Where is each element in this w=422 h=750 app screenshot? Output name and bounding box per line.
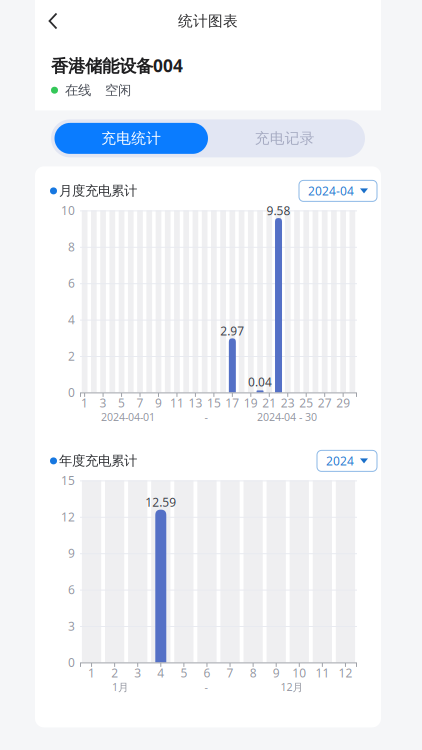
staticText: 年度充电累计 (59, 453, 137, 469)
staticText: 6 (68, 582, 75, 597)
staticText: - (204, 410, 207, 424)
staticText: 1 (81, 395, 88, 411)
staticText: 8 (250, 665, 257, 681)
staticText: 25 (299, 395, 313, 411)
staticText: 23 (281, 395, 295, 411)
staticText: 2 (111, 665, 118, 681)
staticText: 10 (61, 202, 75, 218)
staticText: 11 (315, 665, 329, 681)
button[interactable]: 2024-04 (299, 180, 377, 201)
staticText: - (204, 680, 207, 694)
staticText: 3 (134, 665, 141, 681)
staticText: 1月 (112, 680, 129, 694)
staticText: 9 (155, 395, 162, 411)
staticText: 充电统计 (101, 129, 161, 147)
button[interactable]: Back (35, 0, 75, 42)
button[interactable]: 充电记录 (208, 123, 361, 154)
staticText: 充电记录 (255, 129, 315, 147)
staticText: 12 (338, 665, 352, 681)
staticText: 9 (273, 665, 280, 681)
staticText: 4 (68, 312, 75, 327)
staticText: 10 (292, 665, 306, 681)
staticText: 7 (136, 395, 143, 411)
staticText: 17 (225, 395, 239, 411)
staticText: 4 (157, 665, 164, 681)
staticText: 2024-04-01 (101, 410, 155, 424)
button[interactable]: 充电统计 (54, 123, 208, 154)
staticText: 0 (68, 384, 75, 400)
staticText: 9 (68, 545, 75, 561)
staticText: 12.59 (145, 494, 176, 510)
staticText: 香港储能设备004 (51, 54, 183, 77)
staticText: 15 (207, 395, 221, 411)
staticText: 空闲 (105, 82, 131, 98)
staticText: 2024-04 - 30 (257, 410, 317, 424)
staticText: 27 (318, 395, 332, 411)
staticText: 月度充电累计 (59, 183, 137, 199)
staticText: 5 (118, 395, 125, 411)
staticText: 统计图表 (178, 12, 238, 30)
staticText: 6 (68, 275, 75, 291)
staticText: 2024-04 (308, 183, 354, 199)
button[interactable]: 2024 (317, 450, 377, 471)
staticText: 2.97 (220, 323, 244, 339)
staticText: 2024 (326, 453, 354, 469)
staticText: 12月 (280, 680, 303, 694)
staticText: 29 (336, 395, 350, 411)
staticText: 15 (61, 472, 75, 488)
staticText: 13 (188, 395, 202, 411)
staticText: 5 (180, 665, 187, 681)
staticText: 0 (68, 654, 75, 670)
staticText: 8 (68, 239, 75, 255)
staticText: 7 (226, 665, 233, 681)
staticText: 1 (88, 665, 95, 681)
staticText: 19 (244, 395, 258, 411)
staticText: 0.04 (248, 374, 272, 390)
staticText: 6 (203, 665, 210, 681)
staticText: 3 (68, 618, 75, 634)
staticText: 9.58 (266, 203, 290, 218)
staticText: 11 (170, 395, 184, 411)
staticText: 12 (61, 509, 75, 525)
staticText: 21 (262, 395, 276, 411)
staticText: 在线 (65, 82, 91, 98)
staticText: 2 (68, 348, 75, 364)
staticText: 3 (100, 395, 107, 411)
